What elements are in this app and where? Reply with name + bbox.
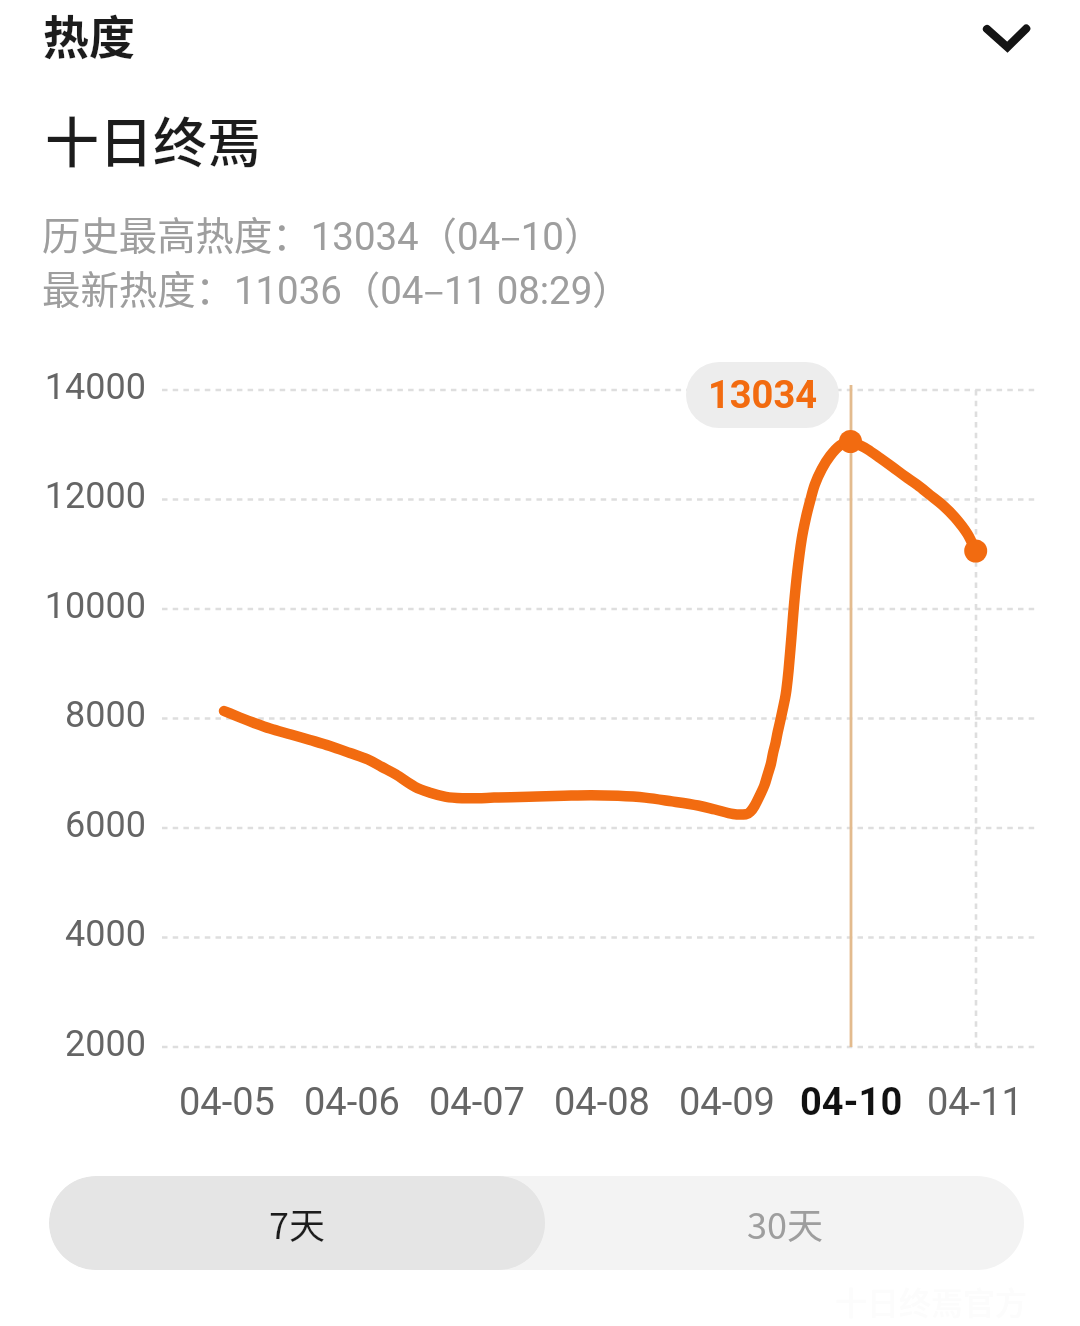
button[interactable]: Collapse [962, 0, 1054, 78]
staticText: 最新热度：11036（04–11 08:29） [42, 259, 631, 315]
staticText: 8000 [65, 694, 146, 736]
staticText: 10000 [44, 585, 146, 627]
staticText: 04-06 [304, 1080, 400, 1125]
staticText: 04-05 [179, 1080, 275, 1125]
button[interactable]: 04-05 [165, 1071, 289, 1123]
button[interactable]: 04-06 [290, 1071, 414, 1123]
staticText: 2000 [65, 1023, 146, 1065]
button[interactable]: 7天 [49, 1176, 545, 1270]
staticText: 十日终焉 [45, 100, 261, 178]
button[interactable]: 04-11 [913, 1071, 1037, 1123]
staticText: 历史最高热度：13034（04–10） [42, 205, 603, 261]
staticText: 04-09 [679, 1080, 775, 1125]
button[interactable]: 04-10 [789, 1071, 913, 1123]
staticText: 7天 [269, 1197, 325, 1249]
staticText: 14000 [44, 366, 146, 408]
staticText: 30天 [747, 1197, 823, 1249]
staticText: 04-08 [554, 1080, 650, 1125]
button[interactable]: 13034 [686, 362, 839, 428]
staticText: 04-07 [429, 1080, 525, 1125]
button[interactable]: 04-07 [415, 1071, 539, 1123]
staticText: 4000 [65, 913, 146, 955]
staticText: 04-10 [800, 1080, 903, 1125]
staticText: 热度 [43, 1, 135, 68]
button[interactable]: 04-09 [665, 1071, 789, 1123]
staticText: 04-11 [927, 1080, 1023, 1125]
staticText: 12000 [44, 475, 146, 517]
staticText: 13034 [708, 373, 818, 418]
button[interactable]: 30天 [545, 1176, 1024, 1270]
staticText: 6000 [65, 804, 146, 846]
button[interactable]: 04-08 [540, 1071, 664, 1123]
